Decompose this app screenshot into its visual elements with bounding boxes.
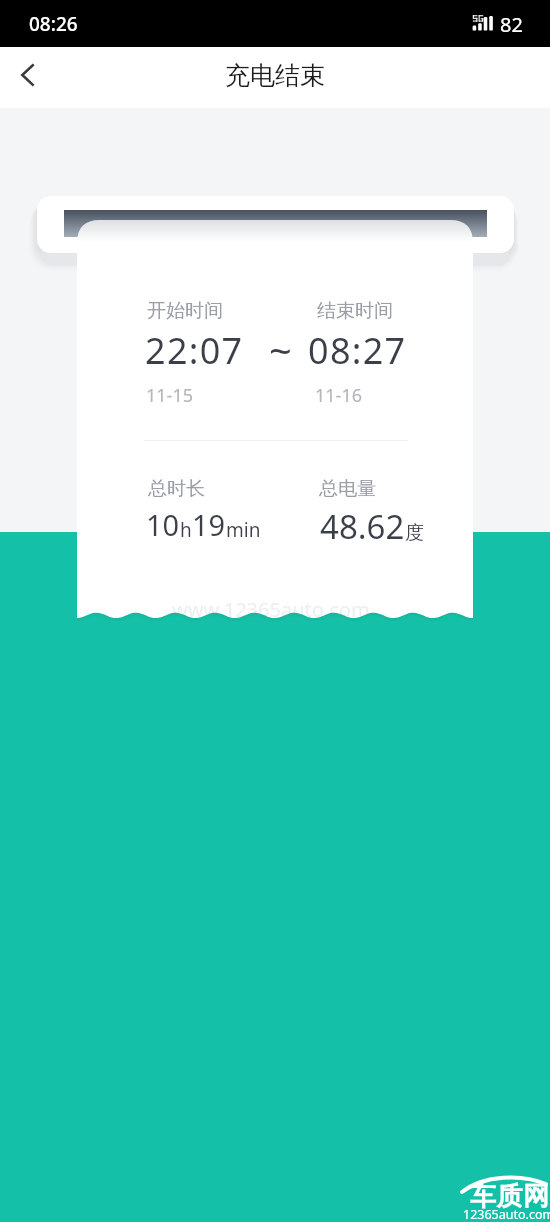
staticText: h xyxy=(180,517,192,543)
staticText: 总电量 xyxy=(319,477,376,501)
staticText: 08:26 xyxy=(29,11,78,37)
staticText: 48.62 xyxy=(320,504,405,549)
staticText: 12365auto.com xyxy=(463,1206,550,1222)
staticText: 11-16 xyxy=(315,383,362,408)
staticText: min xyxy=(226,517,261,543)
staticText: 度 xyxy=(405,521,424,545)
staticText: 10 xyxy=(146,505,180,544)
staticText: 结束时间 xyxy=(317,299,393,323)
staticText: 车质网 xyxy=(470,1180,550,1213)
staticText: 82 xyxy=(500,11,523,38)
staticText: www.12365auto.com xyxy=(172,596,370,623)
staticText: 总时长 xyxy=(148,477,205,501)
staticText: 11-15 xyxy=(146,383,193,408)
staticText: 充电结束 xyxy=(225,60,325,91)
button[interactable]: Back xyxy=(2,52,52,102)
staticText: 22:07 xyxy=(145,326,244,375)
staticText: 08:27 xyxy=(308,326,407,375)
staticText: ~ xyxy=(269,323,292,377)
staticText: 开始时间 xyxy=(147,299,223,323)
staticText: 19 xyxy=(192,505,226,544)
